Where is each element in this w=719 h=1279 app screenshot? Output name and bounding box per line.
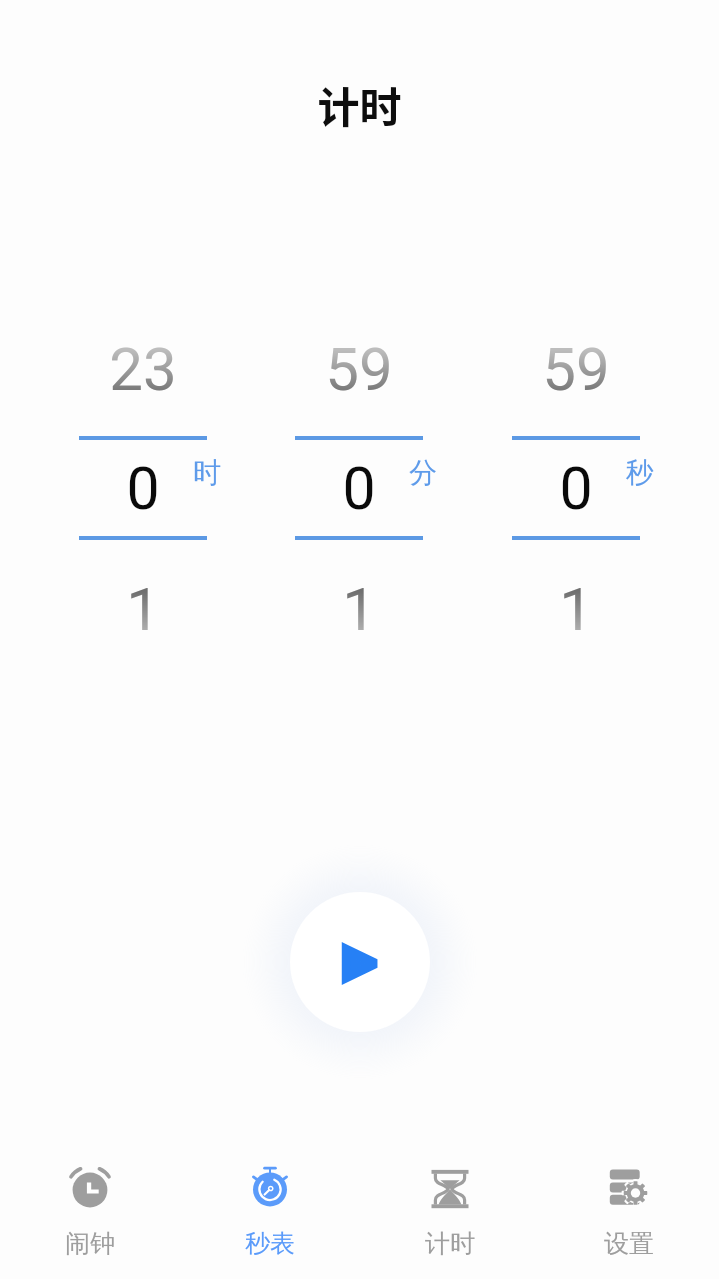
button[interactable]: 0 [295,448,423,528]
other: Timer [426,1166,474,1214]
staticText: 秒 [626,455,654,490]
staticText: 设置 [604,1228,654,1259]
button[interactable]: 1 [79,569,207,649]
button[interactable]: 59 [295,329,423,409]
button[interactable]: Timer [360,1152,540,1279]
button[interactable]: 1 [295,569,423,649]
staticText: 59 [325,334,393,404]
staticText: 1 [559,574,593,644]
staticText: 59 [542,334,610,404]
staticText: 23 [109,334,177,404]
button[interactable]: 59 [512,329,640,409]
staticText: 秒表 [245,1228,295,1259]
other: Alarm [66,1166,114,1214]
button[interactable]: Settings [539,1152,719,1279]
button[interactable]: 0 [512,448,640,528]
button[interactable]: Stopwatch [180,1152,360,1279]
staticText: 0 [126,454,160,523]
other: Settings [605,1166,653,1214]
staticText: 1 [342,574,376,644]
staticText: 0 [559,454,593,523]
button[interactable]: 1 [512,569,640,649]
staticText: 计时 [317,74,402,135]
other: Stopwatch [246,1166,294,1214]
staticText: 时 [193,455,221,490]
button[interactable]: 0 [79,448,207,528]
button[interactable]: 23 [79,329,207,409]
staticText: 闹钟 [65,1228,115,1259]
staticText: 计时 [425,1228,475,1259]
button[interactable]: Alarm [0,1152,180,1279]
staticText: 分 [409,455,437,490]
button[interactable]: Start timer [290,892,430,1032]
staticText: 0 [342,454,376,523]
staticText: 1 [126,574,160,644]
